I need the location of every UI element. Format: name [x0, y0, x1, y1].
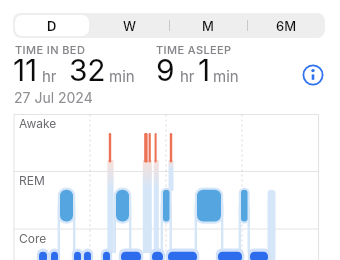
- button[interactable]: [302, 64, 324, 86]
- staticText: TIME IN BED: [15, 43, 86, 56]
- staticText: Awake: [19, 116, 57, 131]
- staticText: 27 Jul 2024: [14, 89, 93, 106]
- staticText: min: [213, 67, 239, 85]
- staticText: hr: [180, 67, 195, 85]
- staticText: 32: [69, 52, 106, 88]
- staticText: D: [47, 18, 57, 34]
- staticText: hr: [42, 67, 57, 85]
- button[interactable]: W: [91, 13, 169, 38]
- button[interactable]: 6M: [247, 13, 325, 38]
- staticText: 6M: [276, 18, 297, 34]
- staticText: W: [123, 18, 137, 34]
- staticText: M: [202, 18, 214, 34]
- staticText: 1: [198, 52, 210, 88]
- staticText: min: [109, 67, 135, 85]
- staticText: TIME ASLEEP: [156, 43, 232, 56]
- button[interactable]: 11: [13, 52, 135, 88]
- staticText: REM: [19, 173, 45, 188]
- button[interactable]: 9: [156, 52, 239, 88]
- button[interactable]: M: [169, 13, 247, 38]
- staticText: Core: [19, 231, 47, 246]
- staticText: 9: [156, 52, 175, 88]
- button[interactable]: D: [15, 15, 89, 36]
- staticText: 11: [13, 52, 37, 88]
